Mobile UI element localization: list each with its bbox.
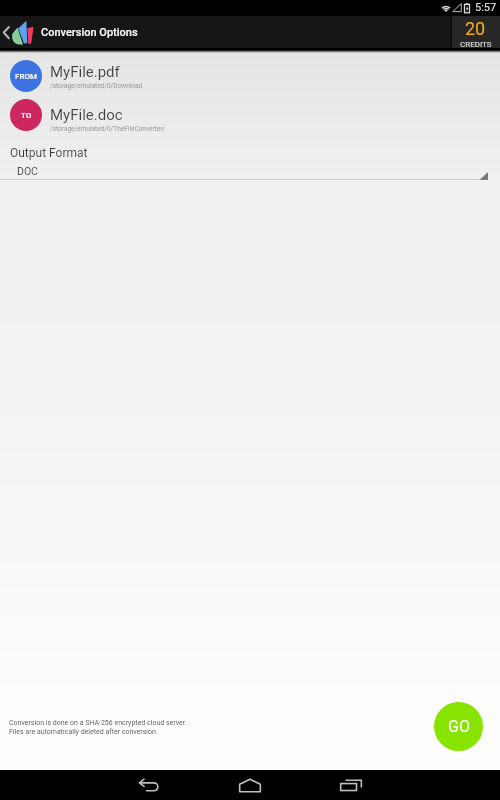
staticText: MyFile.doc <box>50 106 123 124</box>
button[interactable]: Home <box>220 770 280 800</box>
button[interactable]: GO <box>434 702 483 751</box>
button[interactable]: FROM <box>0 60 500 92</box>
button[interactable]: DOC <box>0 165 488 181</box>
staticText: FROM <box>15 72 37 81</box>
button[interactable]: Recent apps <box>321 770 381 800</box>
staticText: DOC <box>17 165 38 177</box>
button[interactable]: 20 <box>451 16 500 48</box>
button[interactable]: Conversion Options <box>0 16 451 48</box>
staticText: Files are automatically deleted after co… <box>9 728 158 736</box>
button[interactable]: TO <box>0 103 500 135</box>
staticText: MyFile.pdf <box>50 63 120 81</box>
button[interactable]: Back <box>119 770 179 800</box>
staticText: TO <box>21 111 32 120</box>
staticText: /storage/emulated/0/Download <box>50 82 143 90</box>
staticText: 5:57 <box>475 1 497 14</box>
staticText: Conversion Options <box>41 26 138 39</box>
staticText: GO <box>448 717 470 736</box>
staticText: 20 <box>465 18 486 39</box>
staticText: CREDITS <box>460 40 492 48</box>
staticText: /storage/emulated/0/TheFileConverter/ <box>50 125 166 133</box>
staticText: Conversion is done on a SHA-256 encrypte… <box>9 719 187 727</box>
staticText: Output Format <box>10 146 88 160</box>
